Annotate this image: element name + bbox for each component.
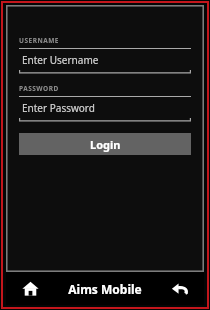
button[interactable]: Back [156, 272, 204, 305]
staticText: Enter Username [22, 53, 99, 67]
staticText: USERNAME [19, 36, 59, 45]
staticText: Aims Mobile [68, 281, 142, 297]
staticText: Enter Password [22, 101, 95, 115]
button[interactable]: Enter Username [16, 49, 194, 70]
button[interactable]: Enter Password [16, 97, 194, 118]
button[interactable]: Login [19, 133, 191, 155]
button[interactable]: Home [6, 272, 54, 305]
staticText: PASSWORD [19, 84, 59, 93]
staticText: Login [90, 137, 121, 152]
